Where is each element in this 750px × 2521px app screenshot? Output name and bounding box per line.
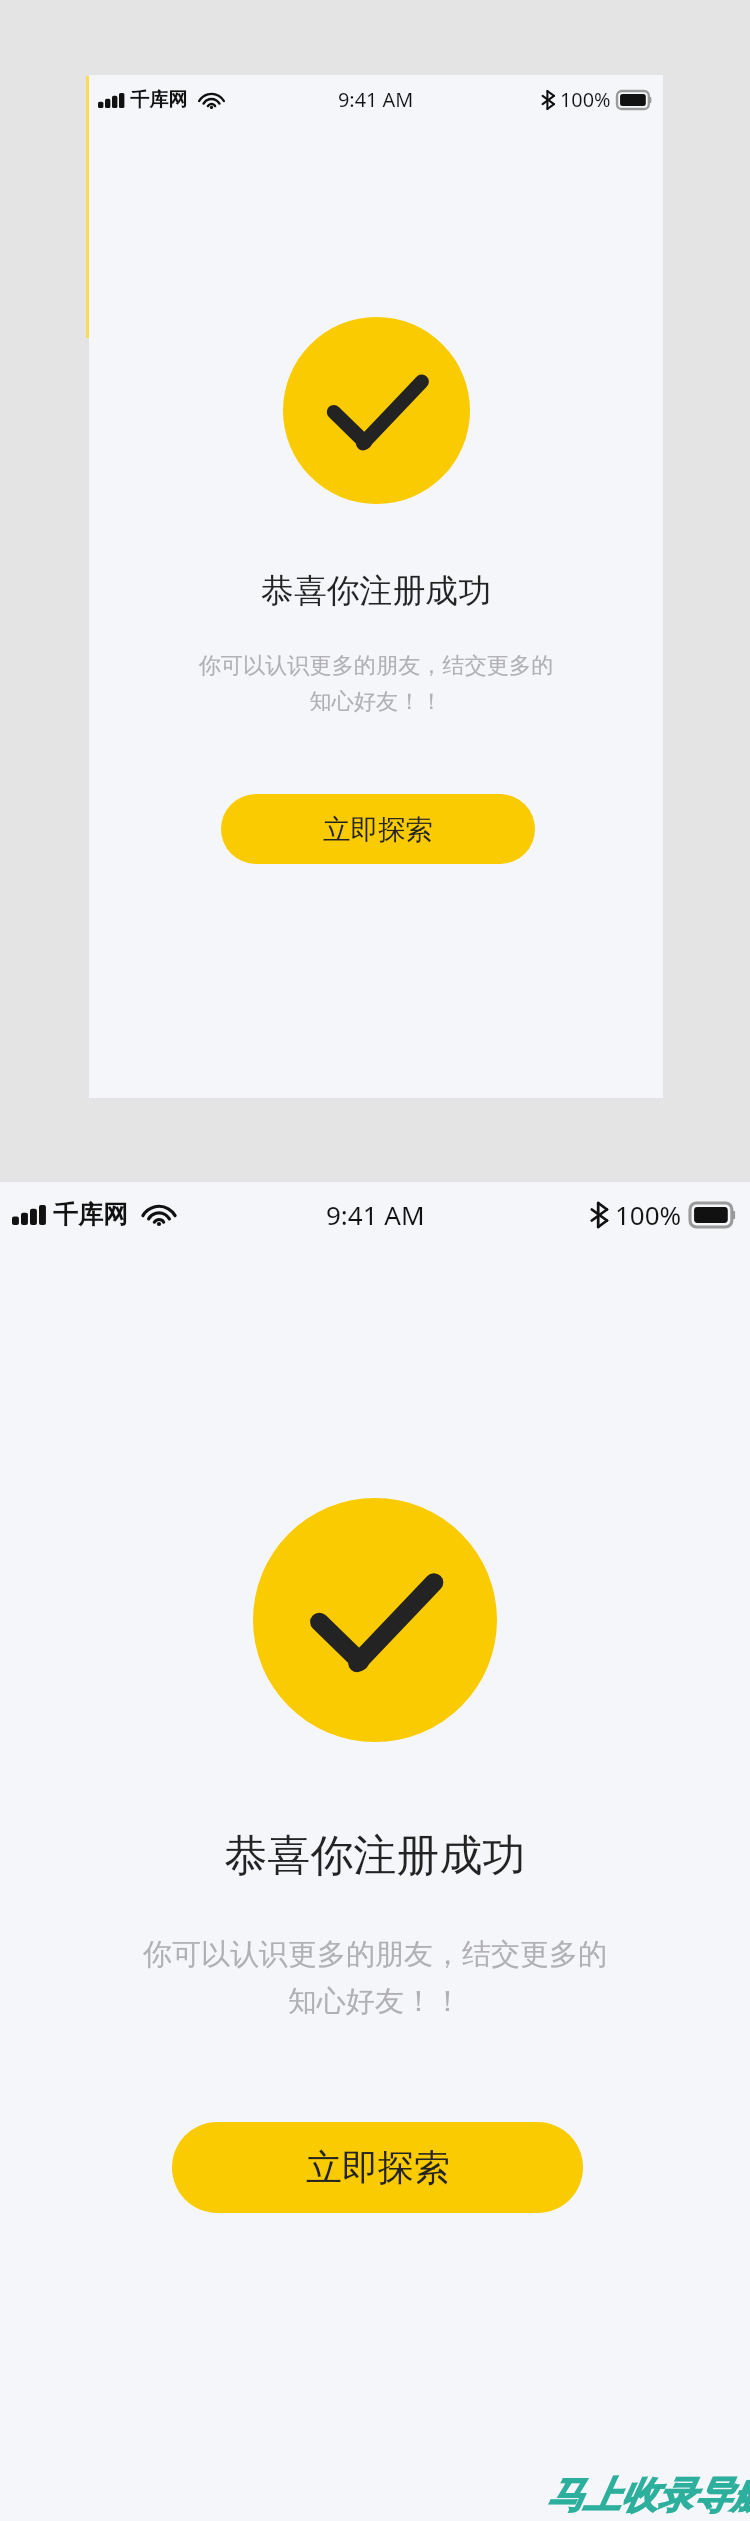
staticText: 100% xyxy=(560,86,611,113)
staticText: 千库网 xyxy=(130,88,188,112)
staticText: 马上收录导航 xyxy=(546,2472,750,2519)
staticText: 恭喜你注册成功 xyxy=(0,1829,750,1883)
staticText: 恭喜你注册成功 xyxy=(89,570,663,611)
staticText: 立即探索 xyxy=(306,2145,450,2190)
staticText: 你可以认识更多的朋友，结交更多的 知心好友！！ xyxy=(0,1936,750,2020)
staticText: 9:41 AM xyxy=(338,86,414,113)
staticText: 9:41 AM xyxy=(326,1197,425,1232)
button[interactable]: 立即探索 xyxy=(221,794,535,864)
staticText: 千库网 xyxy=(53,1199,128,1230)
button[interactable]: 立即探索 xyxy=(172,2122,583,2213)
staticText: 立即探索 xyxy=(323,812,434,847)
staticText: 你可以认识更多的朋友，结交更多的 知心好友！！ xyxy=(89,652,663,715)
staticText: 100% xyxy=(615,1197,682,1232)
